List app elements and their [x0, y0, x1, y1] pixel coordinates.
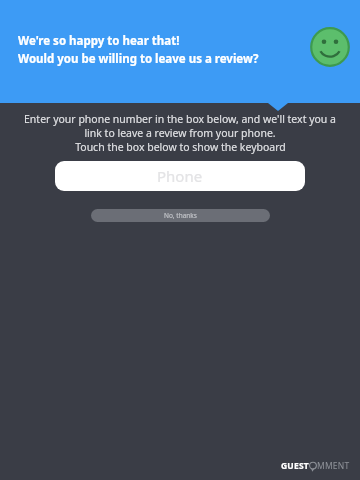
button[interactable]: Phone: [55, 161, 305, 191]
staticText: GUEST: [281, 460, 309, 472]
staticText: Phone: [157, 166, 203, 186]
staticText: Touch the box below to show the keyboard: [75, 140, 286, 154]
staticText: No, thanks: [164, 211, 197, 220]
staticText: Would you be willing to leave us a revie…: [18, 51, 259, 67]
button[interactable]: Happy rating: [310, 27, 350, 67]
staticText: Enter your phone number in the box below…: [24, 112, 336, 140]
button[interactable]: No, thanks: [91, 209, 270, 222]
staticText: We're so happy to hear that!: [18, 33, 180, 49]
staticText: MMENT: [317, 460, 350, 472]
